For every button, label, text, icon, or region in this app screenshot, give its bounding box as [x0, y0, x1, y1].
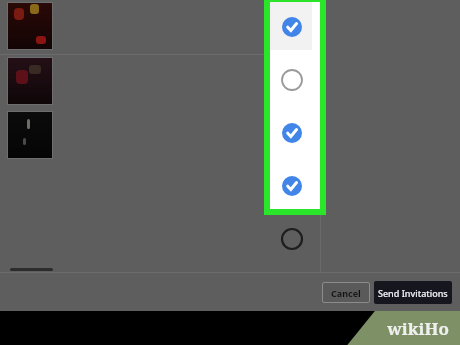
staticText: wikiHow [380, 317, 456, 339]
button[interactable]: Not selected [278, 66, 306, 94]
button[interactable]: Photo thumbnail [7, 57, 53, 105]
button[interactable]: Send Invitations [374, 281, 452, 304]
button[interactable]: Selected [278, 119, 306, 147]
button[interactable]: Not selected [278, 225, 306, 253]
staticText: Send Invitations [378, 287, 448, 299]
button[interactable]: Selected [278, 13, 306, 41]
button[interactable]: Photo thumbnail [7, 2, 53, 50]
staticText: Cancel [331, 287, 361, 299]
button[interactable]: Cancel [322, 282, 370, 303]
button[interactable]: Selected [278, 172, 306, 200]
button[interactable]: Photo thumbnail [7, 111, 53, 159]
